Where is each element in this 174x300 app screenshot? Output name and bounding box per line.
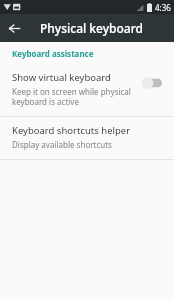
button[interactable]: Show virtual keyboard toggle: [138, 74, 166, 92]
staticText: 4:36: [155, 2, 171, 13]
staticText: Keyboard shortcuts helper: [12, 124, 131, 137]
staticText: Display available shortcuts: [12, 139, 112, 150]
staticText: Show virtual keyboard: [12, 71, 111, 84]
button[interactable]: Show virtual keyboard: [0, 64, 174, 116]
staticText: Keep it on screen while physical keyboar…: [12, 86, 131, 107]
staticText: Keyboard assistance: [12, 48, 94, 59]
staticText: Physical keyboard: [40, 20, 143, 36]
button[interactable]: Keyboard shortcuts helper: [0, 117, 174, 159]
button[interactable]: Back: [0, 14, 28, 42]
